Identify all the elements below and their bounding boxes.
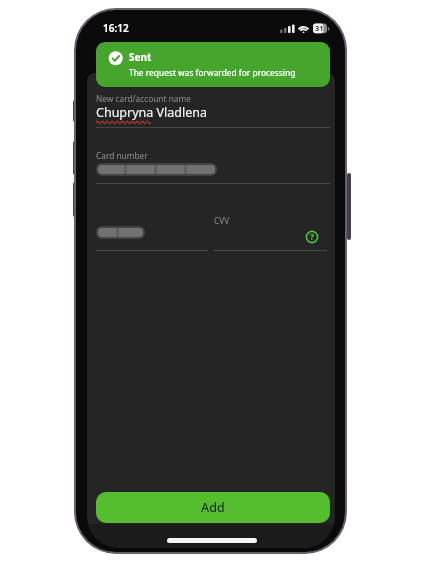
staticText: New card/account name	[96, 93, 191, 104]
staticText: Card number	[96, 150, 148, 161]
staticText: CVV	[214, 215, 230, 226]
staticText: ?	[310, 231, 315, 243]
button[interactable]: Add	[96, 492, 330, 523]
staticText: Chupryna Vladlena	[96, 104, 208, 121]
button[interactable]	[96, 214, 208, 251]
button[interactable]: New card/account name	[96, 90, 330, 128]
staticText: 31	[315, 23, 324, 33]
button[interactable]: ?	[306, 231, 318, 243]
button[interactable]: CVV	[213, 214, 327, 251]
staticText: 16:12	[103, 21, 129, 35]
staticText: Sent	[129, 50, 152, 64]
button[interactable]: Card number	[96, 147, 330, 184]
staticText: Add	[201, 499, 225, 516]
button[interactable]: Sent	[96, 42, 330, 87]
staticText: The request was forwarded for processing	[129, 67, 296, 78]
